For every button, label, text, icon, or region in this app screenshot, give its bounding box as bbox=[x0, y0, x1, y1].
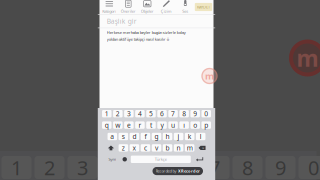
staticText: o bbox=[193, 121, 197, 130]
button[interactable]: s bbox=[119, 133, 128, 140]
staticText: t bbox=[150, 121, 152, 130]
button[interactable]: r bbox=[135, 121, 145, 129]
staticText: x bbox=[132, 143, 136, 152]
staticText: 2 bbox=[116, 109, 120, 118]
staticText: s bbox=[122, 132, 125, 141]
staticText: w bbox=[115, 121, 120, 130]
button[interactable]: j bbox=[174, 133, 183, 140]
button[interactable]: 0 bbox=[201, 110, 211, 117]
staticText: 6 bbox=[176, 154, 187, 180]
staticText: n bbox=[177, 143, 181, 152]
staticText: g bbox=[154, 132, 158, 141]
staticText: Kategori bbox=[102, 8, 116, 14]
staticText: 3 bbox=[77, 154, 88, 180]
button[interactable]: w bbox=[113, 121, 123, 129]
staticText: b bbox=[166, 143, 170, 152]
button[interactable]: Shift bbox=[105, 144, 117, 152]
button[interactable]: k bbox=[185, 133, 194, 140]
staticText: p bbox=[204, 121, 208, 130]
button[interactable]: p bbox=[201, 121, 211, 129]
staticText: yoldan aktif üye takipçi nasıl kasılır ö bbox=[107, 37, 169, 42]
staticText: Objeler bbox=[141, 8, 154, 14]
button[interactable]: 2 bbox=[113, 110, 123, 117]
staticText: j bbox=[178, 132, 180, 141]
button[interactable]: b bbox=[163, 144, 172, 152]
button[interactable]: v bbox=[152, 144, 161, 152]
button[interactable]: u bbox=[168, 121, 178, 129]
staticText: 4 bbox=[110, 154, 121, 180]
staticText: m bbox=[296, 43, 318, 73]
staticText: ı bbox=[183, 121, 185, 130]
staticText: 7 bbox=[209, 154, 220, 180]
staticText: Sym bbox=[108, 157, 116, 162]
staticText: 6 bbox=[160, 109, 164, 118]
button[interactable]: Backspace bbox=[196, 144, 208, 152]
button[interactable]: 3 bbox=[124, 110, 134, 117]
staticText: a bbox=[110, 132, 114, 141]
staticText: 3 bbox=[127, 109, 131, 118]
staticText: Çizim bbox=[161, 8, 172, 14]
button[interactable]: 4 bbox=[135, 110, 145, 117]
button[interactable]: z bbox=[119, 144, 128, 152]
staticText: m bbox=[205, 70, 214, 82]
button[interactable]: m bbox=[185, 144, 194, 152]
staticText: 9 bbox=[193, 109, 197, 118]
button[interactable]: y bbox=[157, 121, 167, 129]
staticText: Ses bbox=[182, 8, 188, 14]
staticText: q bbox=[105, 121, 109, 130]
button[interactable]: Sym bbox=[106, 156, 119, 163]
button[interactable]: 6 bbox=[157, 110, 167, 117]
staticText: e bbox=[127, 121, 131, 130]
staticText: Başlık gir bbox=[107, 17, 137, 26]
button[interactable]: Öneriler bbox=[119, 1, 138, 13]
staticText: XRecorder bbox=[178, 168, 200, 174]
staticText: 8 bbox=[182, 109, 186, 118]
button[interactable]: Çizim bbox=[157, 1, 176, 13]
staticText: Recorded by bbox=[155, 168, 176, 174]
button[interactable]: 8 bbox=[179, 110, 189, 117]
button[interactable]: Ses bbox=[176, 1, 195, 13]
button[interactable]: x bbox=[130, 144, 139, 152]
staticText: l bbox=[200, 132, 202, 141]
button[interactable]: 9 bbox=[190, 110, 200, 117]
staticText: 1 bbox=[11, 154, 22, 180]
button[interactable]: n bbox=[174, 144, 183, 152]
staticText: r bbox=[138, 121, 141, 130]
button[interactable]: 1 bbox=[102, 110, 111, 117]
button[interactable]: e bbox=[124, 121, 134, 129]
staticText: z bbox=[122, 143, 125, 152]
button[interactable]: Kategori bbox=[100, 1, 119, 13]
staticText: Herkese merhaba beyler bugün sizlerle ko… bbox=[107, 30, 186, 35]
button[interactable]: Enter bbox=[192, 156, 207, 163]
button[interactable]: l bbox=[196, 133, 205, 140]
button[interactable]: 5 bbox=[146, 110, 156, 117]
button[interactable]: a bbox=[108, 133, 117, 140]
button[interactable]: ı bbox=[179, 121, 189, 129]
staticText: m bbox=[187, 143, 193, 152]
button[interactable]: Türkçe bbox=[131, 156, 191, 163]
staticText: Öneriler bbox=[121, 8, 136, 14]
button[interactable]: d bbox=[130, 133, 139, 140]
button[interactable]: h bbox=[163, 133, 172, 140]
staticText: 7 bbox=[171, 109, 175, 118]
staticText: 2 bbox=[44, 154, 55, 180]
button[interactable]: Objeler bbox=[138, 1, 157, 13]
button[interactable]: g bbox=[152, 133, 161, 140]
staticText: c bbox=[144, 143, 147, 152]
staticText: d bbox=[132, 132, 136, 141]
staticText: f bbox=[144, 132, 146, 141]
button[interactable]: c bbox=[141, 144, 150, 152]
staticText: Türkçe bbox=[155, 157, 167, 162]
button[interactable]: Emoji bbox=[120, 156, 129, 163]
staticText: 0 bbox=[308, 154, 319, 180]
staticText: 1 bbox=[105, 109, 109, 118]
button[interactable]: KAYDET bbox=[195, 3, 212, 11]
button[interactable]: o bbox=[190, 121, 200, 129]
button[interactable]: q bbox=[102, 121, 111, 129]
staticText: 5 bbox=[143, 154, 154, 180]
staticText: u bbox=[171, 121, 175, 130]
button[interactable]: 7 bbox=[168, 110, 178, 117]
button[interactable]: t bbox=[146, 121, 156, 129]
button[interactable]: f bbox=[141, 133, 150, 140]
staticText: 0 bbox=[204, 109, 208, 118]
